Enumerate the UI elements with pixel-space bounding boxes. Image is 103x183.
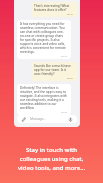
staticText: 09:42 xyxy=(61,54,68,57)
staticText: 09:41 xyxy=(67,76,74,79)
staticText: That's interesting! What features does i… xyxy=(34,4,74,12)
staticText: Definitely! The interface is intuitive, … xyxy=(20,86,68,110)
staticText: Stay in touch with colleagues using chat… xyxy=(12,146,91,171)
button[interactable]: That's interesting! What features does i… xyxy=(31,2,77,17)
button[interactable]: Sounds like a much-have app for our team… xyxy=(31,62,77,81)
staticText: It has everything you need for seamless … xyxy=(20,22,68,54)
button[interactable]: Definitely! The interface is intuitive, … xyxy=(17,84,71,115)
button[interactable]: Send voice message xyxy=(67,116,74,123)
staticText: 09:42 xyxy=(61,110,68,113)
staticText: Message... xyxy=(30,117,46,121)
staticText: 09:41 xyxy=(67,12,74,15)
button[interactable]: Attach file xyxy=(20,116,27,123)
button[interactable]: Attach file xyxy=(17,115,77,123)
staticText: Sounds like a much-have app for our team… xyxy=(34,64,74,76)
button[interactable]: It has everything you need for seamless … xyxy=(17,20,71,59)
